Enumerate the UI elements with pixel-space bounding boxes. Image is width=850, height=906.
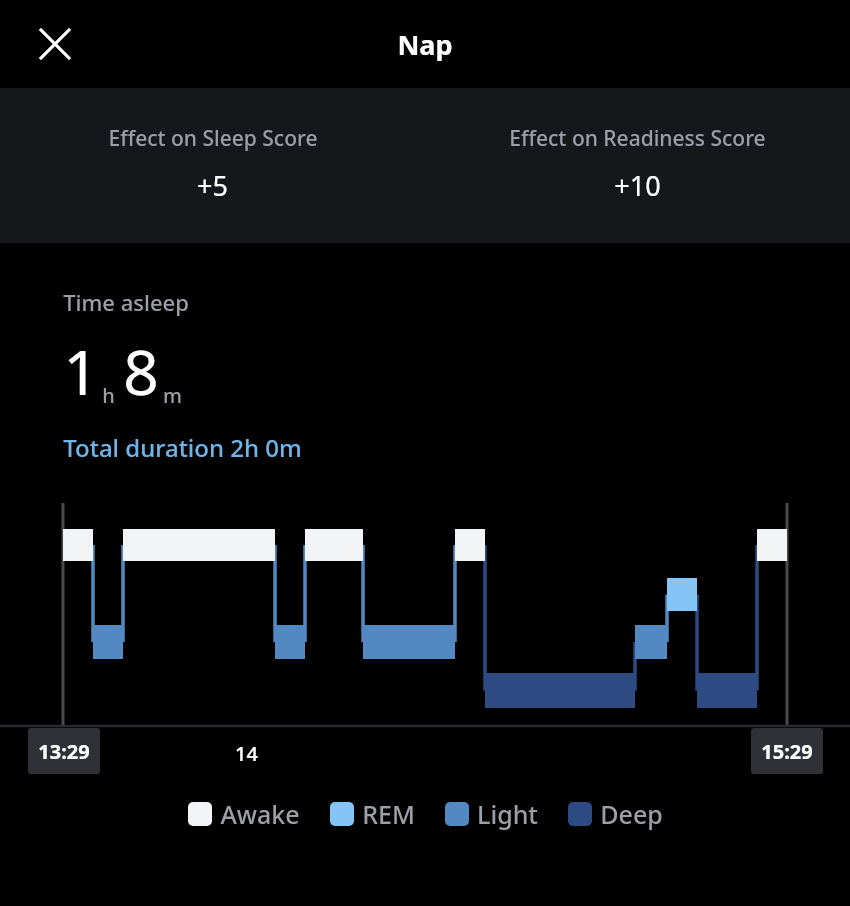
staticText: Nap (397, 26, 453, 63)
staticText: Total duration 2h 0m (63, 431, 302, 464)
staticText: +10 (614, 167, 661, 204)
button[interactable]: Total duration 2h 0m (63, 431, 302, 464)
staticText: 13:29 (38, 738, 90, 765)
button[interactable]: Light (445, 797, 538, 831)
button[interactable]: REM (330, 797, 415, 831)
staticText: 1 (63, 329, 99, 413)
staticText: 8 (123, 329, 159, 413)
staticText: 15:29 (761, 738, 813, 765)
button[interactable]: Effect on Sleep Score (0, 88, 425, 243)
button[interactable]: Awake (188, 797, 300, 831)
staticText: m (163, 382, 182, 409)
staticText: Deep (600, 797, 663, 831)
button[interactable]: Close (30, 19, 80, 69)
staticText: 14 (235, 740, 258, 767)
staticText: REM (362, 797, 415, 831)
staticText: +5 (197, 167, 228, 204)
button[interactable]: Effect on Readiness Score (425, 88, 850, 243)
staticText: Time asleep (63, 287, 189, 317)
staticText: Effect on Readiness Score (509, 124, 766, 153)
staticText: h (102, 382, 115, 409)
staticText: Effect on Sleep Score (108, 124, 318, 153)
button[interactable]: Deep (568, 797, 663, 831)
staticText: Light (477, 797, 538, 831)
staticText: Awake (220, 797, 300, 831)
